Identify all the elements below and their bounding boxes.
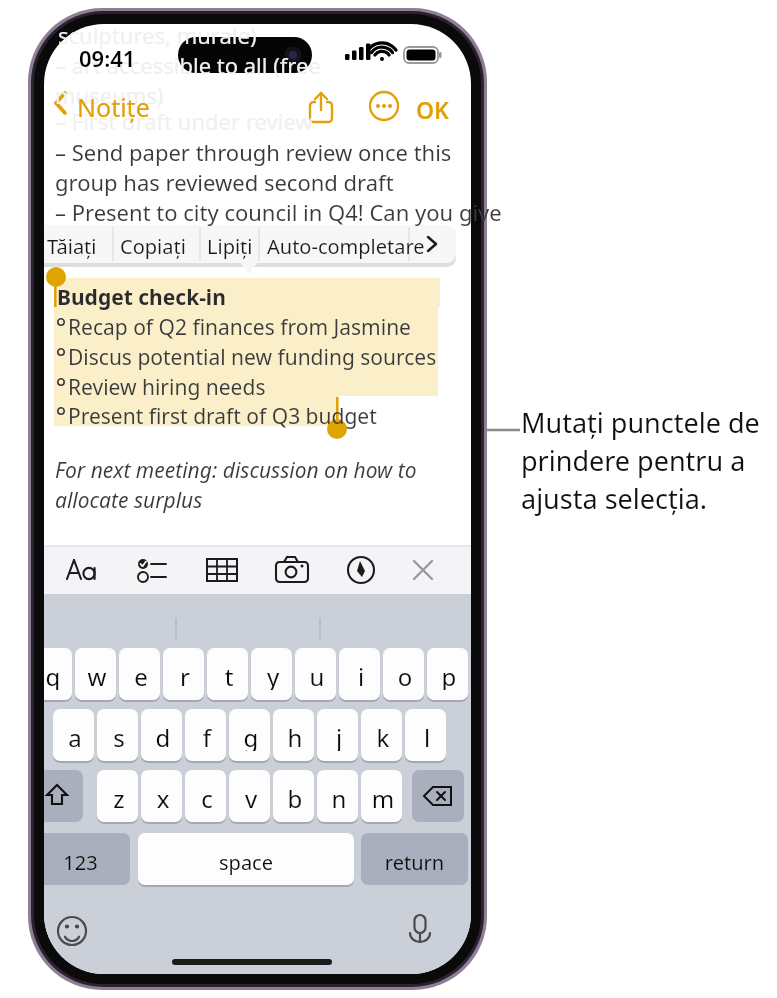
staticText: c bbox=[185, 782, 229, 812]
staticText: OK bbox=[416, 94, 449, 125]
button[interactable]: Numbers bbox=[31, 841, 130, 887]
staticText: m bbox=[361, 782, 405, 812]
staticText: l bbox=[405, 721, 449, 751]
staticText: sculptures, murale) bbox=[58, 20, 257, 50]
staticText: g bbox=[229, 721, 273, 751]
staticText: allocate surplus bbox=[55, 486, 203, 515]
staticText: Mutați punctele de prindere pentru a aju… bbox=[521, 404, 760, 517]
staticText: Present first draft of Q3 budget bbox=[68, 402, 377, 431]
staticText: e bbox=[119, 660, 163, 690]
staticText: b bbox=[273, 782, 317, 812]
staticText: Lipiți bbox=[207, 233, 253, 260]
staticText: u bbox=[295, 660, 339, 690]
button[interactable]: Table bbox=[196, 550, 244, 594]
button[interactable]: Emoji bbox=[48, 906, 98, 956]
staticText: Notițe bbox=[77, 90, 150, 124]
staticText: n bbox=[317, 782, 361, 812]
staticText: Auto-completare bbox=[267, 233, 425, 260]
staticText: v bbox=[229, 782, 273, 812]
button[interactable]: Cut bbox=[36, 224, 122, 264]
staticText: Tăiați bbox=[47, 233, 97, 260]
staticText: t bbox=[207, 660, 251, 690]
staticText: w bbox=[75, 660, 119, 690]
staticText: p bbox=[427, 660, 471, 690]
button[interactable]: Checklist bbox=[126, 550, 174, 594]
staticText: return bbox=[361, 849, 468, 879]
button[interactable]: Return bbox=[361, 841, 468, 887]
staticText: q bbox=[31, 660, 75, 690]
button[interactable]: Dictation bbox=[396, 906, 446, 956]
staticText: 123 bbox=[31, 849, 130, 879]
staticText: k bbox=[361, 721, 405, 751]
staticText: j bbox=[317, 721, 361, 751]
staticText: – art accessible to all (free bbox=[55, 50, 321, 80]
button[interactable]: Space bbox=[138, 841, 354, 887]
staticText: space bbox=[138, 849, 354, 879]
staticText: Copiați bbox=[120, 233, 186, 260]
staticText: z bbox=[97, 782, 141, 812]
staticText: group has reviewed second draft bbox=[55, 167, 394, 197]
button[interactable]: Hide keyboard bbox=[400, 550, 448, 594]
staticText: 09:41 bbox=[79, 43, 136, 73]
button[interactable]: Camera bbox=[268, 550, 316, 594]
staticText: Discus potential new funding sources bbox=[68, 343, 437, 372]
button[interactable]: More options bbox=[360, 84, 408, 130]
staticText: Review hiring needs bbox=[68, 373, 266, 402]
staticText: f bbox=[185, 721, 229, 751]
staticText: x bbox=[141, 782, 185, 812]
staticText: i bbox=[339, 660, 383, 690]
staticText: For next meeting: discussion on how to bbox=[55, 456, 417, 485]
staticText: y bbox=[251, 660, 295, 690]
button[interactable]: Done bbox=[408, 86, 460, 128]
button[interactable]: Share bbox=[300, 84, 348, 130]
staticText: h bbox=[273, 721, 317, 751]
button[interactable]: Delete bbox=[412, 781, 468, 827]
button[interactable]: Shift bbox=[31, 781, 83, 827]
button[interactable]: Autofill bbox=[292, 224, 414, 264]
button[interactable]: More menu items bbox=[414, 224, 456, 264]
button[interactable]: Text format bbox=[56, 550, 104, 594]
staticText: – Present to city council in Q4! Can you… bbox=[55, 197, 502, 227]
staticText: a bbox=[53, 721, 97, 751]
staticText: Budget check-in bbox=[57, 283, 226, 312]
staticText: Recap of Q2 finances from Jasmine bbox=[68, 313, 411, 342]
staticText: d bbox=[141, 721, 185, 751]
button[interactable]: Paste bbox=[218, 224, 292, 264]
staticText: r bbox=[163, 660, 207, 690]
staticText: o bbox=[383, 660, 427, 690]
button[interactable]: Back to Notes bbox=[54, 84, 166, 128]
staticText: s bbox=[97, 721, 141, 751]
staticText: – First draft under review bbox=[55, 106, 313, 136]
button[interactable]: Copy bbox=[122, 224, 218, 264]
staticText: – Send paper through review once this bbox=[55, 137, 452, 167]
button[interactable]: Markup bbox=[336, 550, 384, 594]
staticText: museums) bbox=[55, 80, 164, 110]
